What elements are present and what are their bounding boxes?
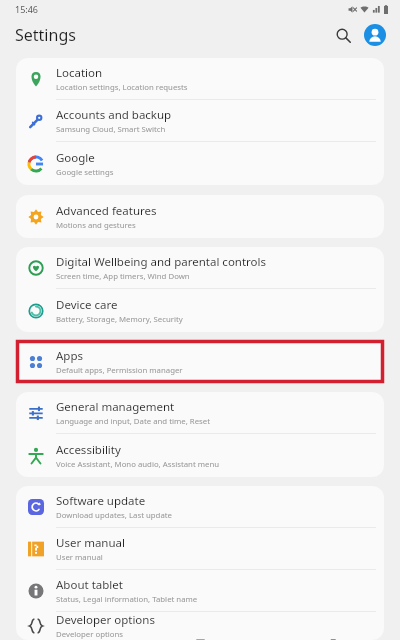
staticText: User manual	[56, 552, 103, 563]
button[interactable]: General management	[16, 392, 384, 434]
staticText: Voice Assistant, Mono audio, Assistant m…	[56, 459, 220, 470]
staticText: User manual	[56, 535, 125, 551]
staticText: Digital Wellbeing and parental controls	[56, 254, 267, 270]
button[interactable]: Search	[328, 20, 358, 50]
staticText: Advanced features	[56, 203, 157, 219]
staticText: Motions and gestures	[56, 220, 136, 231]
staticText: Device care	[56, 297, 118, 313]
staticText: Google	[56, 150, 95, 166]
staticText: Status, Legal information, Tablet name	[56, 594, 198, 605]
staticText: About tablet	[56, 577, 123, 593]
button[interactable]: Account	[360, 20, 390, 50]
button[interactable]: Software update	[16, 486, 384, 528]
staticText: Battery, Storage, Memory, Security	[56, 314, 183, 325]
staticText: Accessibility	[56, 442, 121, 458]
button[interactable]: Advanced features	[16, 195, 384, 238]
button[interactable]: Google	[16, 142, 384, 185]
button[interactable]: Developer options	[16, 612, 384, 640]
button[interactable]: Digital Wellbeing and parental controls	[16, 247, 384, 289]
button[interactable]: Accessibility	[16, 434, 384, 477]
staticText: Accounts and backup	[56, 107, 172, 123]
staticText: Software update	[56, 493, 146, 509]
button[interactable]: Device care	[16, 289, 384, 332]
staticText: General management	[56, 399, 175, 415]
staticText: Apps	[56, 348, 84, 364]
staticText: Location settings, Location requests	[56, 82, 188, 93]
staticText: Location	[56, 65, 103, 81]
button[interactable]: Location	[16, 58, 384, 100]
staticText: Developer options	[56, 629, 124, 640]
staticText: Language and input, Date and time, Reset	[56, 416, 211, 427]
staticText: Screen time, App timers, Wind Down	[56, 271, 190, 282]
button[interactable]: About tablet	[16, 570, 384, 612]
button[interactable]: Accounts and backup	[16, 100, 384, 142]
button[interactable]: Apps	[16, 340, 384, 383]
staticText: Download updates, Last update	[56, 510, 173, 521]
staticText: Samsung Cloud, Smart Switch	[56, 124, 166, 135]
staticText: Default apps, Permission manager	[56, 365, 183, 376]
staticText: Settings	[15, 24, 76, 46]
staticText: Google settings	[56, 167, 114, 178]
button[interactable]: User manual	[16, 528, 384, 570]
staticText: Developer options	[56, 612, 155, 628]
staticText: 15:46	[15, 3, 39, 15]
